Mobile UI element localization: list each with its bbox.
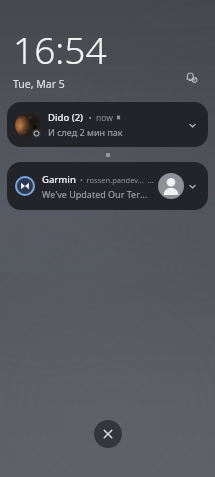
- staticText: Tue, Mar 5: [13, 77, 65, 91]
- button[interactable]: Expand notification: [184, 117, 200, 133]
- staticText: 16:54: [13, 24, 107, 74]
- staticText: Garmin: [42, 173, 76, 186]
- button[interactable]: Close notifications: [94, 420, 122, 448]
- button[interactable]: Garmin: [7, 162, 208, 210]
- staticText: И след 2 мин пак: [48, 126, 123, 138]
- button[interactable]: Silent notifications: [180, 66, 202, 88]
- staticText: • now: [84, 112, 113, 124]
- staticText: Dido (2): [48, 111, 84, 124]
- button[interactable]: Dido (2): [7, 102, 208, 147]
- button[interactable]: 16:54: [13, 24, 180, 91]
- staticText: We've Updated Our Terms of …: [42, 188, 154, 200]
- button[interactable]: Expand notification: [184, 178, 200, 194]
- staticText: • rossen.pandev... • 6m: [76, 175, 154, 185]
